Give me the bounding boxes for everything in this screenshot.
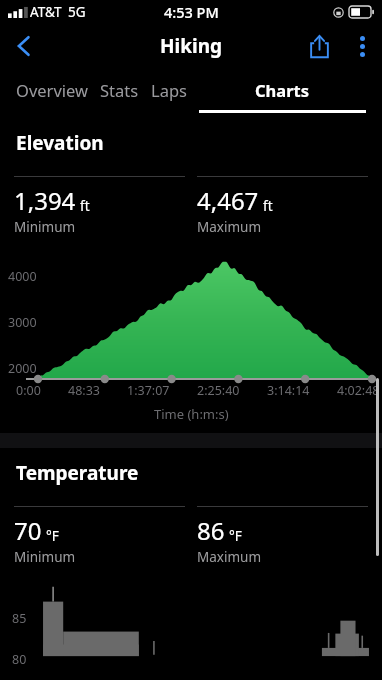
staticText: 70	[14, 514, 42, 547]
staticText: Minimum	[14, 218, 76, 236]
button[interactable]: Charts	[193, 68, 372, 113]
staticText: 3000	[8, 314, 37, 331]
staticText: 5G	[68, 3, 86, 21]
staticText: Laps	[151, 79, 187, 101]
staticText: Temperature	[16, 460, 139, 486]
staticText: 86	[197, 514, 225, 547]
button[interactable]: Back	[0, 24, 48, 68]
staticText: Elevation	[16, 130, 104, 156]
staticText: 1:37:07	[127, 382, 170, 399]
staticText: 3:14:14	[267, 382, 310, 399]
staticText: 2:25:40	[197, 382, 240, 399]
staticText: AT&T	[30, 3, 62, 21]
staticText: °F	[229, 527, 242, 545]
staticText: ft	[263, 197, 273, 215]
staticText: Maximum	[197, 548, 262, 566]
staticText: Maximum	[197, 218, 262, 236]
staticText: Overview	[16, 79, 88, 101]
staticText: Time (h:m:s)	[154, 405, 229, 423]
button[interactable]: More options	[342, 24, 382, 68]
button[interactable]: Laps	[145, 68, 193, 110]
staticText: ft	[80, 197, 90, 215]
staticText: 2000	[8, 360, 37, 377]
staticText: °F	[46, 527, 59, 545]
staticText: 0:00	[16, 382, 41, 399]
staticText: 4,467	[197, 184, 259, 217]
button[interactable]: Share	[296, 24, 342, 68]
button[interactable]: Stats	[94, 68, 145, 110]
staticText: 85	[12, 610, 27, 627]
staticText: Minimum	[14, 548, 76, 566]
staticText: 4:02:48	[337, 382, 380, 399]
staticText: Hiking	[160, 33, 223, 59]
staticText: Stats	[100, 79, 139, 101]
staticText: 4000	[8, 268, 37, 285]
staticText: 48:33	[68, 382, 100, 399]
staticText: 80	[12, 651, 27, 668]
button[interactable]: Overview	[10, 68, 94, 110]
staticText: Charts	[255, 79, 310, 101]
staticText: 4:53 PM	[164, 2, 219, 22]
staticText: 1,394	[14, 184, 76, 217]
